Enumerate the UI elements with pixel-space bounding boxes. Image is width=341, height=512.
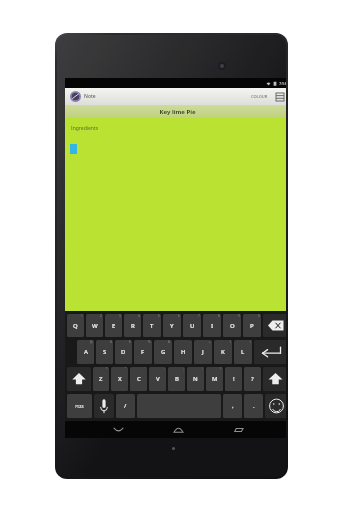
button[interactable]: D bbox=[115, 340, 132, 364]
button[interactable]: Emoji bbox=[265, 394, 286, 418]
staticText: D bbox=[121, 348, 126, 356]
button[interactable]: Recent apps bbox=[219, 421, 257, 438]
button[interactable]: Shift bbox=[263, 367, 286, 391]
staticText: ; bbox=[183, 367, 184, 371]
staticText: A bbox=[84, 348, 88, 356]
staticText: " bbox=[125, 367, 127, 371]
staticText: O bbox=[230, 322, 235, 330]
button[interactable]: S bbox=[96, 340, 113, 364]
staticText: 5 bbox=[158, 314, 160, 318]
staticText: I bbox=[211, 322, 214, 330]
button[interactable]: . bbox=[244, 394, 263, 418]
staticText: * bbox=[106, 367, 108, 371]
staticText: ' bbox=[145, 367, 146, 371]
button[interactable]: Enter bbox=[254, 340, 286, 364]
staticText: H bbox=[181, 348, 186, 356]
staticText: M bbox=[212, 375, 218, 383]
staticText: J bbox=[202, 348, 204, 356]
staticText: ? bbox=[220, 367, 222, 371]
button[interactable]: COLOUR bbox=[249, 92, 270, 101]
button[interactable]: Z bbox=[93, 367, 109, 391]
button[interactable]: A bbox=[77, 340, 94, 364]
staticText: @ bbox=[90, 340, 93, 344]
staticText: Z bbox=[99, 375, 103, 383]
button[interactable]: F bbox=[134, 340, 152, 364]
button[interactable]: Back bbox=[99, 421, 137, 438]
staticText: 7 bbox=[198, 314, 200, 318]
button[interactable]: I bbox=[203, 314, 221, 337]
button[interactable]: P bbox=[243, 314, 261, 337]
staticText: / bbox=[124, 402, 127, 410]
staticText: ( bbox=[230, 340, 231, 344]
staticText: & bbox=[168, 340, 171, 344]
staticText: 2 bbox=[100, 314, 102, 318]
staticText: L bbox=[241, 348, 245, 356]
button[interactable]: Voice input bbox=[94, 394, 114, 418]
staticText: # bbox=[110, 340, 112, 344]
staticText: S bbox=[103, 348, 107, 356]
staticText: N bbox=[193, 375, 198, 383]
staticText: 8 bbox=[218, 314, 220, 318]
staticText: $ bbox=[129, 340, 131, 344]
staticText: Q bbox=[73, 322, 78, 330]
staticText: W bbox=[92, 322, 98, 330]
button[interactable]: ! bbox=[225, 367, 242, 391]
button[interactable]: E bbox=[105, 314, 122, 337]
staticText: Key lime Pie bbox=[159, 108, 196, 116]
staticText: Y bbox=[170, 322, 174, 330]
button[interactable]: O bbox=[223, 314, 241, 337]
button[interactable]: Y bbox=[163, 314, 181, 337]
button[interactable]: K bbox=[214, 340, 232, 364]
staticText: K bbox=[221, 348, 225, 356]
button[interactable]: , bbox=[223, 394, 242, 418]
button[interactable]: M bbox=[206, 367, 223, 391]
button[interactable]: J bbox=[194, 340, 212, 364]
staticText: 4 bbox=[138, 314, 140, 318]
staticText: - bbox=[190, 340, 191, 344]
button[interactable]: Backspace bbox=[263, 314, 286, 337]
button[interactable]: ? bbox=[244, 367, 261, 391]
button[interactable]: H bbox=[174, 340, 192, 364]
button[interactable]: U bbox=[183, 314, 201, 337]
button[interactable]: B bbox=[168, 367, 185, 391]
staticText: C bbox=[137, 375, 141, 383]
staticText: : bbox=[164, 367, 165, 371]
staticText: , bbox=[232, 402, 234, 410]
staticText: T bbox=[150, 322, 154, 330]
staticText: U bbox=[190, 322, 195, 330]
button[interactable]: Home bbox=[159, 421, 197, 438]
staticText: 3 bbox=[119, 314, 121, 318]
button[interactable]: X bbox=[111, 367, 128, 391]
staticText: ) bbox=[250, 340, 251, 344]
button[interactable]: R bbox=[124, 314, 141, 337]
staticText: B bbox=[175, 375, 179, 383]
staticText: 0 bbox=[258, 314, 260, 318]
button[interactable]: C bbox=[130, 367, 147, 391]
staticText: R bbox=[131, 322, 135, 330]
button[interactable]: ?123 bbox=[67, 394, 92, 418]
staticText: G bbox=[161, 348, 166, 356]
staticText: Note bbox=[84, 93, 96, 100]
button[interactable]: Note bbox=[69, 91, 97, 102]
staticText: ? bbox=[251, 375, 254, 383]
staticText: ! bbox=[233, 375, 235, 383]
button[interactable]: Q bbox=[67, 314, 84, 337]
button[interactable]: L bbox=[234, 340, 252, 364]
button[interactable]: Shift bbox=[67, 367, 91, 391]
staticText: COLOUR bbox=[251, 94, 268, 99]
button[interactable]: G bbox=[154, 340, 172, 364]
button[interactable]: Overflow menu bbox=[274, 91, 286, 103]
button[interactable]: / bbox=[116, 394, 135, 418]
staticText: E bbox=[112, 322, 116, 330]
staticText: % bbox=[148, 340, 151, 344]
button[interactable]: N bbox=[187, 367, 204, 391]
staticText: . bbox=[253, 402, 255, 410]
staticText: 1 bbox=[81, 314, 83, 318]
staticText: F bbox=[141, 348, 145, 356]
staticText: X bbox=[118, 375, 122, 383]
staticText: P bbox=[250, 322, 254, 330]
button[interactable]: T bbox=[143, 314, 161, 337]
button[interactable]: W bbox=[86, 314, 103, 337]
button[interactable]: V bbox=[149, 367, 166, 391]
